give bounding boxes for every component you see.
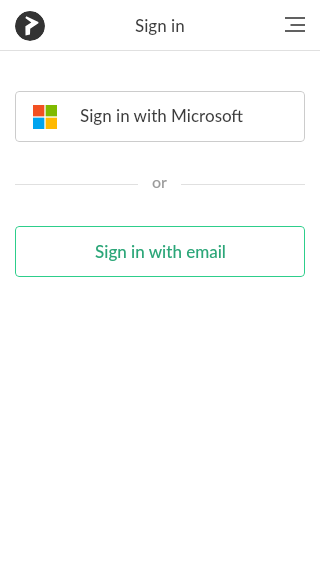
- staticText: or: [152, 172, 167, 190]
- button[interactable]: Menu: [275, 6, 315, 46]
- button[interactable]: Sign in with Microsoft: [15, 91, 305, 142]
- staticText: Sign in with email: [95, 241, 226, 261]
- button[interactable]: Home: [15, 11, 45, 41]
- button[interactable]: Sign in with email: [15, 226, 305, 277]
- staticText: Sign in: [135, 15, 185, 35]
- staticText: Sign in with Microsoft: [80, 105, 244, 125]
